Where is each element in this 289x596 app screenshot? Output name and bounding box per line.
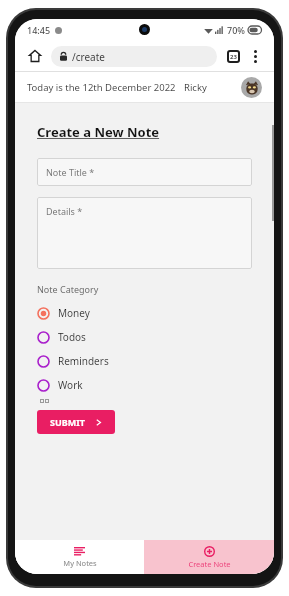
staticText: Create Note	[188, 559, 231, 569]
staticText: Reminders	[58, 354, 109, 368]
staticText: My Notes	[63, 558, 97, 568]
staticText: Money	[58, 306, 90, 320]
button[interactable]: Profile avatar	[241, 77, 262, 98]
button[interactable]: Create Note	[144, 540, 274, 574]
staticText: 14:45	[27, 24, 51, 36]
button[interactable]: Todos	[37, 325, 252, 349]
button[interactable]: Home	[24, 45, 46, 67]
button[interactable]: Tabs, 23 open	[223, 46, 243, 66]
staticText: 70%	[227, 24, 245, 36]
staticText: /create	[72, 50, 105, 64]
staticText: Todos	[58, 330, 86, 344]
button[interactable]: My Notes	[15, 540, 144, 574]
staticText: Ricky	[184, 81, 207, 94]
button[interactable]: Work	[37, 373, 252, 397]
button[interactable]: Details *	[37, 197, 252, 269]
staticText: SUBMIT	[50, 416, 85, 428]
staticText: Work	[58, 378, 83, 392]
button[interactable]: SUBMIT	[37, 410, 115, 434]
staticText: Details *	[46, 205, 83, 217]
button[interactable]: More options	[245, 46, 265, 66]
button[interactable]: Reminders	[37, 349, 252, 373]
staticText: Create a New Note	[37, 123, 160, 141]
button[interactable]: Money	[37, 301, 252, 325]
staticText: Note Category	[37, 283, 99, 295]
staticText: 23	[230, 53, 237, 61]
button[interactable]: Note Title *	[37, 158, 252, 186]
staticText: Note Title *	[46, 166, 95, 178]
button[interactable]: /create	[51, 46, 217, 67]
staticText: Today is the 12th December 2022	[27, 81, 176, 94]
